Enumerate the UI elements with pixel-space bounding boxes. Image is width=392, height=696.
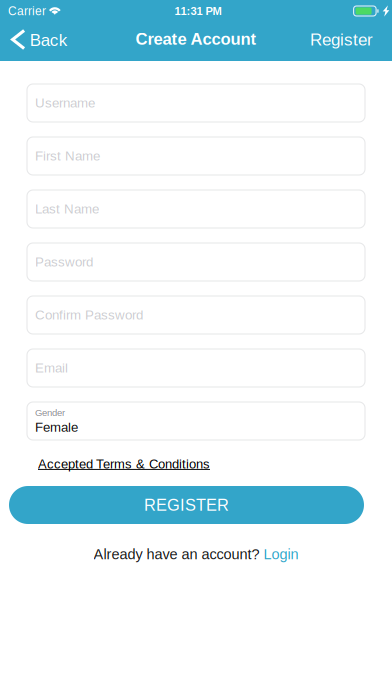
staticText: Confirm Password [35, 308, 143, 322]
staticText: Back [30, 30, 68, 49]
staticText: 11:31 PM [174, 5, 221, 17]
staticText: Username [35, 96, 95, 110]
staticText: Register [310, 30, 373, 49]
staticText: Already have an account? [93, 546, 259, 562]
staticText: Last Name [35, 202, 99, 216]
staticText: Password [35, 255, 93, 269]
staticText: Female [35, 420, 78, 435]
button[interactable]: Register [300, 22, 392, 61]
button[interactable]: Gender [27, 402, 365, 440]
button[interactable]: Back [0, 22, 78, 61]
button[interactable]: Login [263, 546, 298, 562]
button[interactable]: Accepted Terms & Conditions [0, 450, 392, 478]
staticText: Carrier [8, 4, 46, 18]
staticText: Email [35, 361, 68, 375]
staticText: REGISTER [144, 496, 229, 514]
staticText: First Name [35, 149, 100, 163]
staticText: Login [263, 546, 298, 562]
staticText: Create Account [135, 30, 256, 48]
staticText: Accepted Terms & Conditions [38, 457, 210, 471]
staticText: Gender [35, 407, 65, 418]
button[interactable]: REGISTER [9, 486, 364, 524]
